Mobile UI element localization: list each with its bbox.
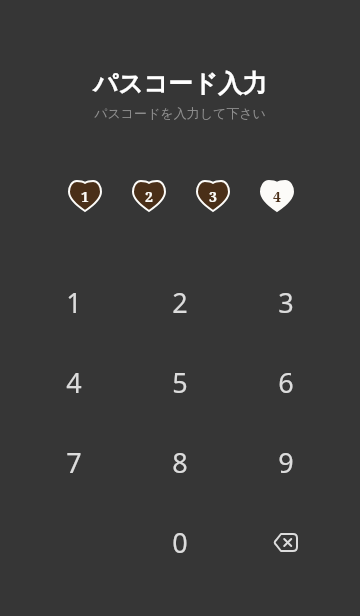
button[interactable]: 3 xyxy=(233,262,339,342)
staticText: 6 xyxy=(278,364,294,401)
button[interactable]: 2 xyxy=(127,262,233,342)
staticText: 9 xyxy=(278,444,294,481)
button[interactable]: 8 xyxy=(127,422,233,502)
button[interactable]: 0 xyxy=(127,502,233,582)
button[interactable]: 4 xyxy=(21,342,127,422)
staticText: 2 xyxy=(145,187,153,206)
staticText: 2 xyxy=(172,284,188,321)
staticText: 1 xyxy=(66,284,82,321)
staticText: 5 xyxy=(172,364,188,401)
staticText: 3 xyxy=(278,284,294,321)
button[interactable]: Backspace xyxy=(233,502,339,582)
button[interactable]: 5 xyxy=(127,342,233,422)
staticText: 3 xyxy=(209,187,217,206)
staticText: 4 xyxy=(66,364,82,401)
button[interactable]: 1 xyxy=(21,262,127,342)
staticText: 1 xyxy=(81,187,89,206)
staticText: 0 xyxy=(172,524,188,561)
button[interactable]: 6 xyxy=(233,342,339,422)
staticText: パスコードを入力して下さい xyxy=(94,105,266,121)
button[interactable]: 7 xyxy=(21,422,127,502)
staticText: 4 xyxy=(273,187,281,206)
staticText: 7 xyxy=(66,444,82,481)
staticText: パスコード入力 xyxy=(93,68,267,99)
staticText: 8 xyxy=(172,444,188,481)
button[interactable]: 9 xyxy=(233,422,339,502)
